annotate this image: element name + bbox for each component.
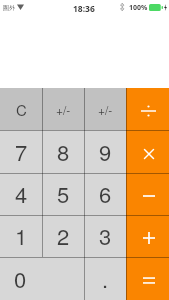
staticText: 5 xyxy=(57,178,70,210)
button[interactable]: Multiply xyxy=(126,130,169,173)
button[interactable]: 8 xyxy=(42,130,84,173)
button[interactable]: 2 xyxy=(42,215,84,257)
staticText: 2 xyxy=(57,220,70,252)
staticText: C xyxy=(16,99,27,120)
staticText: 4 xyxy=(15,178,28,210)
staticText: . xyxy=(102,263,109,295)
staticText: 3 xyxy=(99,220,112,252)
staticText: 7 xyxy=(15,136,28,168)
button[interactable]: 5 xyxy=(42,173,84,215)
staticText: 圏外 xyxy=(3,4,15,12)
button[interactable]: 1 xyxy=(0,215,42,257)
button[interactable]: 3 xyxy=(84,215,126,257)
button[interactable]: 4 xyxy=(0,173,42,215)
button[interactable]: Divide xyxy=(126,88,169,130)
staticText: 8 xyxy=(57,136,70,168)
button[interactable]: +/- xyxy=(42,88,84,130)
button[interactable]: Equals xyxy=(126,257,169,300)
button[interactable]: Add xyxy=(126,215,169,257)
staticText: 18:36 xyxy=(73,3,95,15)
button[interactable]: C xyxy=(0,88,42,130)
button[interactable]: 6 xyxy=(84,173,126,215)
staticText: +/- xyxy=(98,101,113,118)
staticText: 9 xyxy=(99,136,112,168)
button[interactable]: 7 xyxy=(0,130,42,173)
button[interactable]: +/- xyxy=(84,88,126,130)
button[interactable]: . xyxy=(84,257,126,300)
button[interactable]: 9 xyxy=(84,130,126,173)
staticText: 0 xyxy=(14,263,27,295)
staticText: 1 xyxy=(15,220,28,252)
button[interactable]: Subtract xyxy=(126,173,169,215)
staticText: 100% xyxy=(129,3,148,13)
button[interactable]: 0 xyxy=(0,257,84,300)
staticText: +/- xyxy=(56,101,71,118)
staticText: 6 xyxy=(99,178,112,210)
